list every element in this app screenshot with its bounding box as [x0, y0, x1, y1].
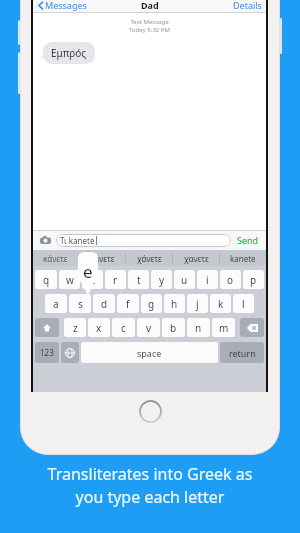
staticText: Dad: [141, 0, 159, 11]
staticText: space: [137, 347, 162, 359]
button[interactable]: κάνετε: [79, 250, 125, 266]
button[interactable]: k: [210, 294, 231, 313]
button[interactable]: kanete: [220, 250, 266, 266]
staticText: n: [195, 321, 202, 335]
button[interactable]: f: [117, 294, 139, 313]
button[interactable]: c: [112, 318, 135, 337]
button[interactable]: g: [141, 294, 162, 313]
staticText: kanete: [230, 253, 256, 264]
button[interactable]: space: [81, 342, 218, 363]
staticText: Text Message: [33, 18, 266, 26]
staticText: χάνετε: [137, 253, 162, 264]
button[interactable]: s: [69, 294, 91, 313]
staticText: j: [196, 297, 199, 311]
button[interactable]: p: [243, 270, 264, 289]
staticText: κάνετε: [43, 253, 68, 264]
staticText: 123: [40, 347, 54, 358]
staticText: u: [181, 273, 188, 287]
button[interactable]: r: [105, 270, 126, 289]
button[interactable]: m: [212, 318, 235, 337]
button[interactable]: z: [64, 318, 86, 337]
button[interactable]: return: [220, 342, 264, 363]
button[interactable]: o: [220, 270, 241, 289]
staticText: h: [171, 297, 178, 311]
button[interactable]: a: [45, 294, 67, 313]
staticText: m: [219, 321, 229, 335]
staticText: Τι kanete: [60, 235, 95, 246]
button[interactable]: v: [137, 318, 160, 337]
button[interactable]: Send: [235, 234, 261, 246]
staticText: w: [66, 273, 74, 287]
button[interactable]: κάνετε: [33, 250, 78, 266]
button[interactable]: j: [187, 294, 208, 313]
staticText: o: [227, 273, 234, 287]
staticText: Transliterates into Greek as: [0, 463, 300, 485]
staticText: Send: [237, 234, 259, 246]
button[interactable]: h: [164, 294, 185, 313]
staticText: z: [73, 321, 78, 335]
staticText: e: [90, 273, 96, 287]
staticText: Today 5:32 PM: [33, 26, 266, 34]
button[interactable]: Camera: [38, 233, 52, 247]
staticText: i: [206, 273, 209, 287]
staticText: κάνετε: [90, 253, 115, 264]
button[interactable]: y: [151, 270, 172, 289]
staticText: r: [113, 273, 118, 287]
button[interactable]: Change keyboard language: [61, 342, 79, 363]
staticText: d: [101, 297, 108, 311]
button[interactable]: χανετε: [173, 250, 219, 266]
staticText: f: [126, 297, 130, 311]
button[interactable]: Messages: [36, 0, 89, 13]
staticText: s: [78, 297, 83, 311]
staticText: y: [159, 273, 165, 287]
staticText: Details: [233, 0, 262, 11]
staticText: b: [170, 321, 177, 335]
button[interactable]: Εμπρός: [43, 42, 95, 64]
button[interactable]: l: [233, 294, 254, 313]
staticText: c: [121, 321, 126, 335]
button[interactable]: x: [88, 318, 110, 337]
button[interactable]: e: [82, 270, 103, 289]
button[interactable]: Details: [229, 0, 266, 13]
staticText: p: [250, 273, 257, 287]
button[interactable]: Shift: [35, 318, 59, 337]
button[interactable]: n: [187, 318, 210, 337]
button[interactable]: 123: [35, 342, 59, 363]
staticText: k: [218, 297, 224, 311]
staticText: t: [137, 273, 141, 287]
button[interactable]: Τι kanete: [56, 234, 231, 247]
staticText: q: [43, 273, 50, 287]
staticText: you type each letter: [0, 486, 300, 508]
staticText: e: [83, 260, 93, 283]
button[interactable]: Backspace: [240, 318, 264, 337]
staticText: g: [148, 297, 155, 311]
staticText: v: [146, 321, 152, 335]
staticText: χανετε: [184, 253, 209, 264]
staticText: a: [53, 297, 59, 311]
staticText: Εμπρός: [51, 46, 87, 60]
button[interactable]: b: [162, 318, 185, 337]
button[interactable]: i: [197, 270, 218, 289]
button[interactable]: d: [93, 294, 115, 313]
staticText: l: [242, 297, 245, 311]
button[interactable]: w: [59, 270, 80, 289]
staticText: Messages: [45, 0, 87, 11]
button[interactable]: q: [35, 270, 57, 289]
button[interactable]: u: [174, 270, 195, 289]
button[interactable]: χάνετε: [126, 250, 172, 266]
button[interactable]: t: [128, 270, 149, 289]
staticText: return: [229, 347, 256, 359]
staticText: x: [96, 321, 102, 335]
